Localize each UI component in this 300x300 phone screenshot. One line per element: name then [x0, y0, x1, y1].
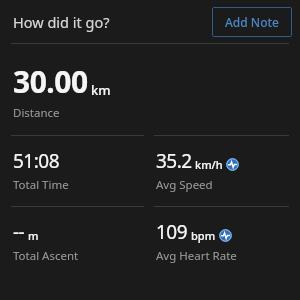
staticText: --: [13, 219, 25, 245]
staticText: Total Time: [13, 177, 69, 193]
staticText: 109: [156, 219, 188, 245]
staticText: 35.2: [156, 148, 192, 174]
button[interactable]: Add Note: [212, 7, 292, 37]
staticText: Add Note: [225, 14, 279, 30]
staticText: How did it go?: [13, 12, 110, 32]
staticText: km: [91, 81, 111, 99]
staticText: 51:08: [13, 148, 60, 174]
staticText: Avg Speed: [156, 177, 213, 193]
button[interactable]: 35.2: [150, 148, 300, 193]
staticText: Total Ascent: [13, 248, 79, 264]
button[interactable]: 109: [150, 219, 300, 264]
button[interactable]: 51:08: [0, 148, 150, 193]
button[interactable]: 30.00: [0, 44, 300, 135]
button[interactable]: --: [0, 219, 150, 264]
staticText: bpm: [191, 228, 216, 243]
staticText: m: [28, 228, 39, 243]
staticText: 30.00: [13, 61, 88, 102]
staticText: Distance: [13, 105, 60, 121]
staticText: km/h: [195, 157, 223, 172]
staticText: Avg Heart Rate: [156, 248, 237, 264]
